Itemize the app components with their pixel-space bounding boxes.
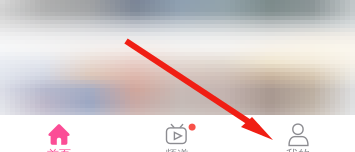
staticText: 首页 bbox=[47, 147, 71, 152]
button[interactable]: 首页 bbox=[0, 115, 118, 152]
button[interactable]: 频道 bbox=[118, 115, 236, 152]
staticText: 频道 bbox=[165, 147, 189, 152]
button[interactable]: 我的 bbox=[236, 115, 354, 152]
staticText: 我的 bbox=[286, 147, 310, 152]
